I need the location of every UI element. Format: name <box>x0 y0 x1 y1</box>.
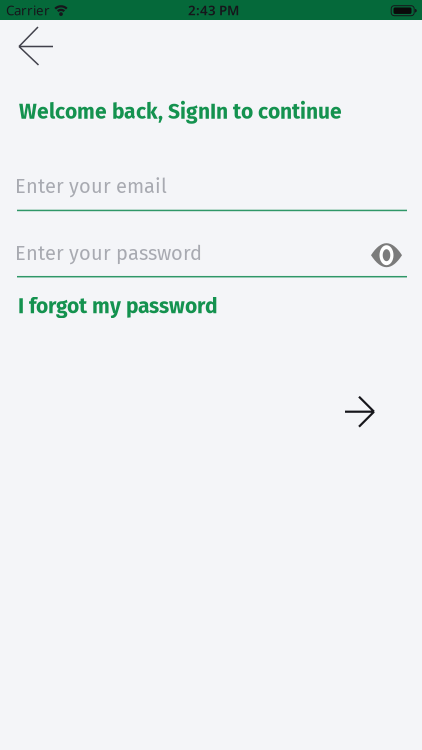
button[interactable]: Back <box>14 26 54 66</box>
staticText: Carrier <box>6 1 50 19</box>
secureTextField[interactable]: Enter your password <box>15 241 371 265</box>
staticText: Enter your password <box>15 241 202 265</box>
button[interactable]: Show password <box>371 241 402 265</box>
staticText: I forgot my password <box>18 294 218 319</box>
button[interactable]: Sign in <box>342 394 378 430</box>
staticText: Enter your email <box>15 174 167 198</box>
button[interactable]: I forgot my password <box>18 294 218 319</box>
textField[interactable]: Enter your email <box>15 174 407 198</box>
staticText: 2:43 PM <box>188 1 239 19</box>
staticText: Welcome back, SignIn to continue <box>19 99 342 124</box>
